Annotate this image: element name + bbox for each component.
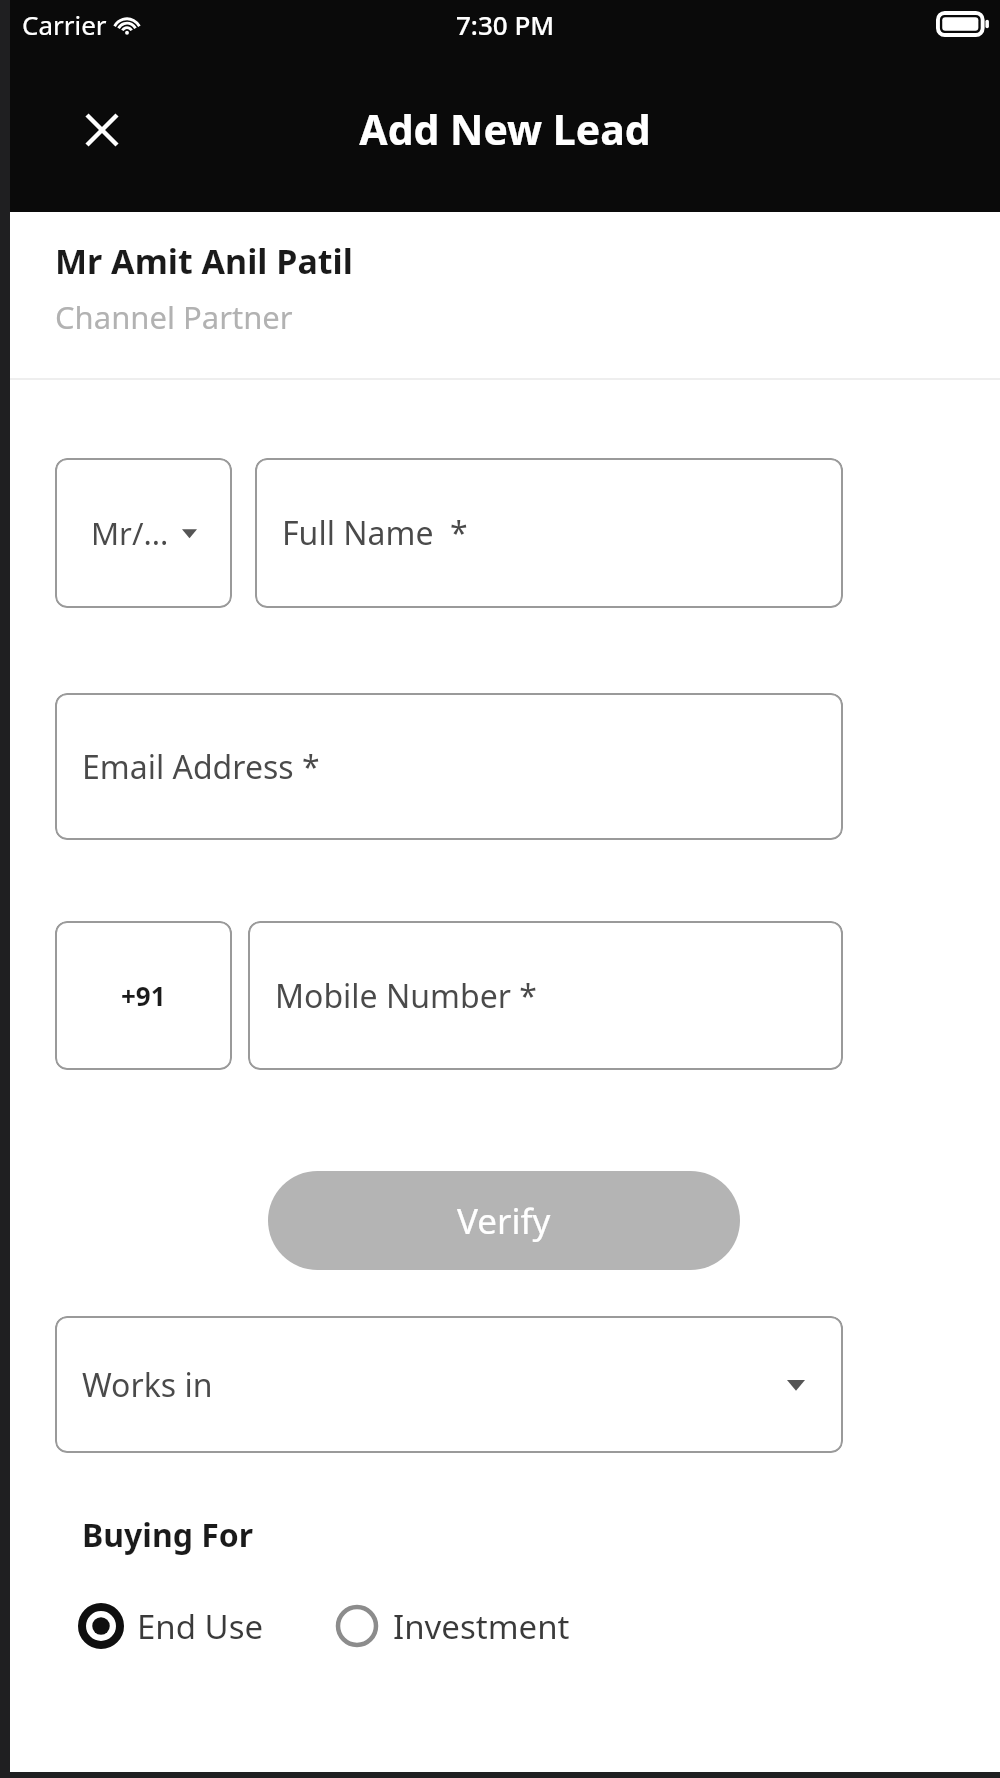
staticText: Mr/...: [91, 512, 169, 554]
staticText: Mobile Number *: [275, 974, 537, 1018]
staticText: End Use: [137, 1604, 264, 1649]
button[interactable]: Works in: [55, 1316, 843, 1453]
staticText: Email Address *: [82, 745, 320, 789]
button[interactable]: Mobile Number: [248, 921, 843, 1070]
button[interactable]: Email Address: [55, 693, 843, 840]
button[interactable]: Investment: [328, 1597, 576, 1655]
staticText: Carrier: [22, 7, 107, 42]
button[interactable]: End Use: [72, 1597, 270, 1655]
staticText: Mr Amit Anil Patil: [55, 238, 353, 284]
button[interactable]: Country code +91: [55, 921, 232, 1070]
button[interactable]: Close: [74, 102, 130, 158]
staticText: +91: [121, 978, 166, 1013]
staticText: Verify: [457, 1197, 551, 1245]
staticText: Channel Partner: [55, 296, 293, 338]
staticText: 7:30 PM: [456, 7, 555, 42]
staticText: Buying For: [82, 1513, 254, 1557]
staticText: Investment: [393, 1604, 570, 1649]
button[interactable]: Full Name: [255, 458, 843, 608]
staticText: Works in: [82, 1363, 213, 1407]
staticText: Full Name *: [282, 511, 468, 555]
button[interactable]: Select title: [55, 458, 232, 608]
button[interactable]: Verify: [268, 1171, 740, 1270]
staticText: Add New Lead: [359, 101, 651, 157]
